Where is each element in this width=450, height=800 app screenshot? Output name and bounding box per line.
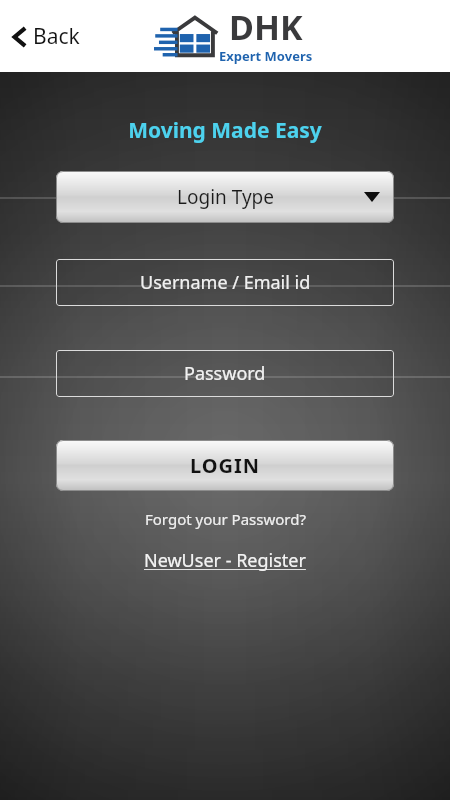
staticText: Back [33, 22, 80, 51]
button[interactable]: Username / Email id [56, 259, 394, 306]
button[interactable]: Login Type [56, 171, 394, 223]
staticText: Login Type [177, 184, 274, 210]
button[interactable]: Password [56, 350, 394, 397]
staticText: DHK [229, 4, 303, 50]
staticText: Expert Movers [219, 47, 313, 65]
staticText: Moving Made Easy [128, 116, 322, 145]
staticText: Forgot your Password? [145, 509, 306, 529]
button[interactable]: Back [6, 14, 86, 59]
button[interactable]: Forgot your Password? [135, 505, 316, 533]
staticText: Username / Email id [140, 270, 311, 295]
staticText: LOGIN [190, 452, 261, 479]
button[interactable]: LOGIN [56, 440, 394, 491]
button[interactable]: NewUser - Register [134, 545, 316, 576]
staticText: Password [184, 361, 266, 386]
staticText: NewUser - Register [144, 548, 306, 573]
